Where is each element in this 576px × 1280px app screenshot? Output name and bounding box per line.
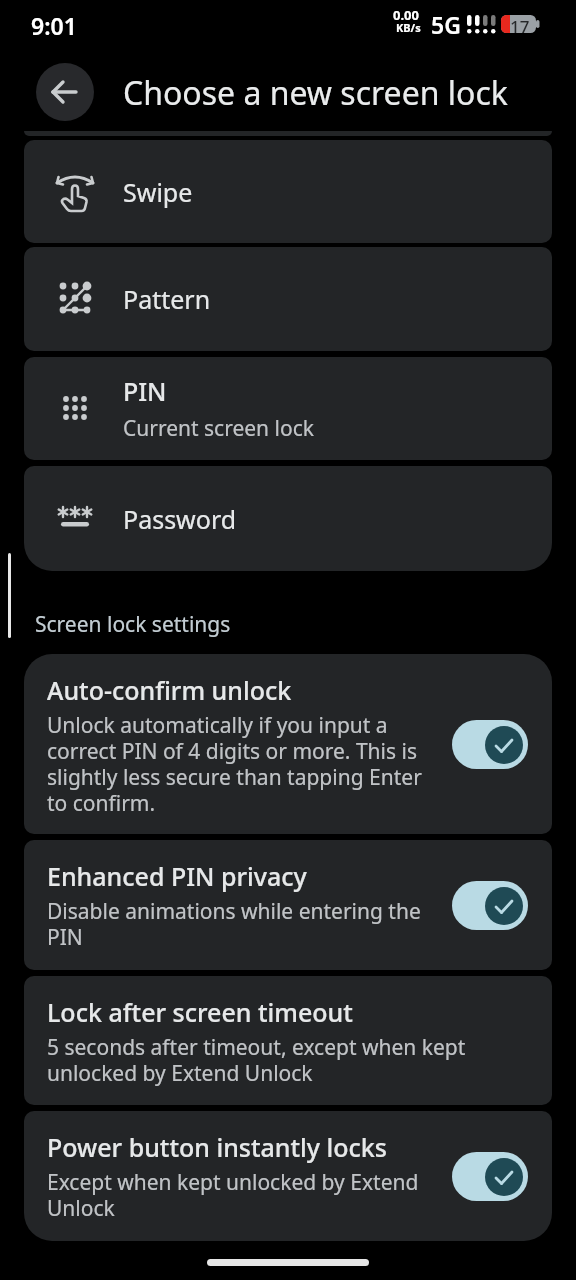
staticText: Pattern xyxy=(123,282,211,316)
button[interactable]: Enhanced PIN privacy xyxy=(24,840,552,970)
button[interactable]: Password xyxy=(24,466,552,571)
staticText: 9:01 xyxy=(31,10,77,41)
staticText: Current screen lock xyxy=(123,414,314,443)
staticText: PIN xyxy=(123,374,167,408)
button[interactable]: Auto-confirm unlock xyxy=(24,654,552,834)
staticText: Unlock automatically if you input a corr… xyxy=(47,711,422,818)
staticText: KB/s xyxy=(396,20,421,35)
button[interactable] xyxy=(452,720,528,769)
staticText: 0.00 xyxy=(393,6,419,24)
staticText: Except when kept unlocked by Extend Unlo… xyxy=(47,1168,419,1223)
staticText: Disable animations while entering the PI… xyxy=(47,897,421,952)
button[interactable]: Swipe xyxy=(24,140,552,243)
button[interactable] xyxy=(36,63,94,121)
staticText: 5G xyxy=(431,9,461,40)
staticText: Choose a new screen lock xyxy=(123,71,508,115)
button[interactable]: Power button instantly locks xyxy=(24,1111,552,1241)
staticText: 17 xyxy=(510,15,530,38)
button[interactable]: PIN xyxy=(24,357,552,460)
staticText: Swipe xyxy=(123,175,193,209)
staticText: Enhanced PIN privacy xyxy=(47,859,307,893)
staticText: Password xyxy=(123,502,237,536)
staticText: Screen lock settings xyxy=(35,610,231,639)
button[interactable] xyxy=(452,1152,528,1201)
staticText: Auto-confirm unlock xyxy=(47,673,292,707)
staticText: Power button instantly locks xyxy=(47,1130,387,1164)
button[interactable] xyxy=(452,881,528,930)
staticText: 5 seconds after timeout, except when kep… xyxy=(47,1033,466,1088)
button[interactable]: Pattern xyxy=(24,247,552,351)
button[interactable]: Lock after screen timeout xyxy=(24,976,552,1105)
staticText: Lock after screen timeout xyxy=(47,995,353,1029)
